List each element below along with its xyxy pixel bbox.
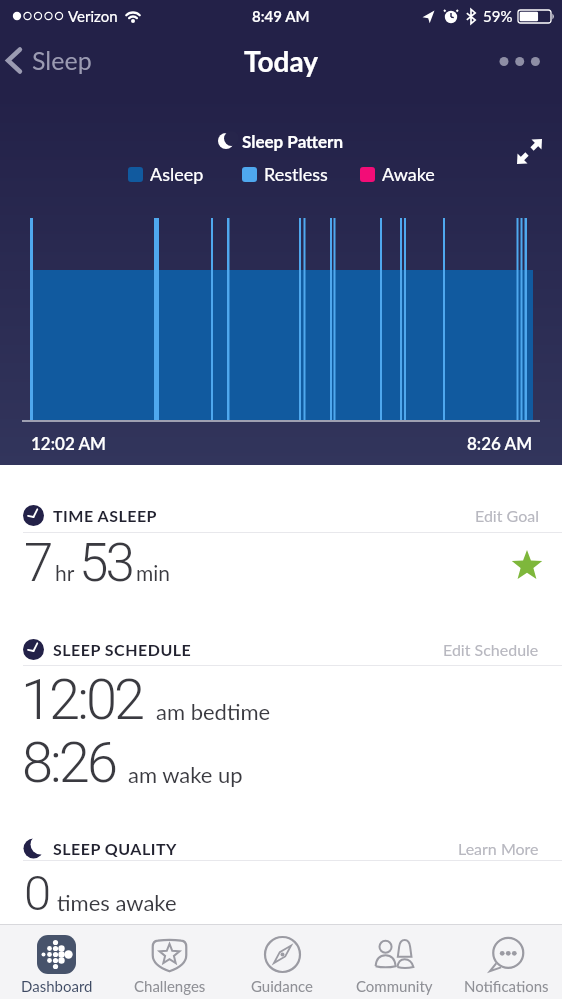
staticText: Asleep bbox=[150, 163, 204, 185]
staticText: Guidance bbox=[251, 977, 313, 995]
button[interactable]: Community bbox=[338, 925, 450, 999]
staticText: 12:02 bbox=[21, 667, 143, 733]
staticText: Awake bbox=[382, 163, 435, 185]
staticText: 8:49 AM bbox=[252, 7, 310, 25]
staticText: Restless bbox=[264, 163, 328, 185]
staticText: 7 bbox=[24, 532, 51, 594]
button[interactable] bbox=[499, 57, 540, 67]
button[interactable]: Edit Goal bbox=[475, 506, 539, 525]
staticText: Dashboard bbox=[21, 977, 93, 995]
button[interactable]: Guidance bbox=[226, 925, 338, 999]
staticText: Today bbox=[244, 44, 318, 78]
button[interactable]: Challenges bbox=[113, 925, 226, 999]
button[interactable]: Edit Schedule bbox=[443, 640, 539, 659]
staticText: 12:02 AM bbox=[31, 433, 107, 453]
staticText: am bedtime bbox=[156, 698, 271, 724]
button[interactable]: Sleep bbox=[6, 45, 92, 75]
button[interactable]: Notifications bbox=[450, 925, 562, 999]
staticText: hr bbox=[55, 560, 75, 585]
staticText: Notifications bbox=[464, 977, 549, 995]
staticText: Challenges bbox=[134, 977, 206, 995]
staticText: Sleep bbox=[32, 45, 92, 75]
staticText: 59% bbox=[483, 7, 513, 25]
staticText: Sleep Pattern bbox=[242, 131, 344, 151]
staticText: am wake up bbox=[128, 761, 243, 787]
button[interactable] bbox=[517, 139, 542, 164]
staticText: Community bbox=[356, 977, 433, 995]
staticText: TIME ASLEEP bbox=[53, 506, 158, 525]
staticText: Verizon bbox=[68, 7, 118, 25]
staticText: times awake bbox=[57, 889, 177, 915]
staticText: 8:26 AM bbox=[467, 433, 533, 453]
staticText: SLEEP SCHEDULE bbox=[53, 640, 192, 659]
staticText: min bbox=[136, 560, 171, 585]
staticText: SLEEP QUALITY bbox=[53, 839, 177, 858]
button[interactable]: Learn More bbox=[458, 839, 539, 858]
staticText: 53 bbox=[79, 532, 132, 594]
staticText: 0 bbox=[24, 865, 49, 922]
staticText: 8:26 bbox=[22, 730, 115, 796]
button[interactable]: Dashboard bbox=[0, 925, 113, 999]
